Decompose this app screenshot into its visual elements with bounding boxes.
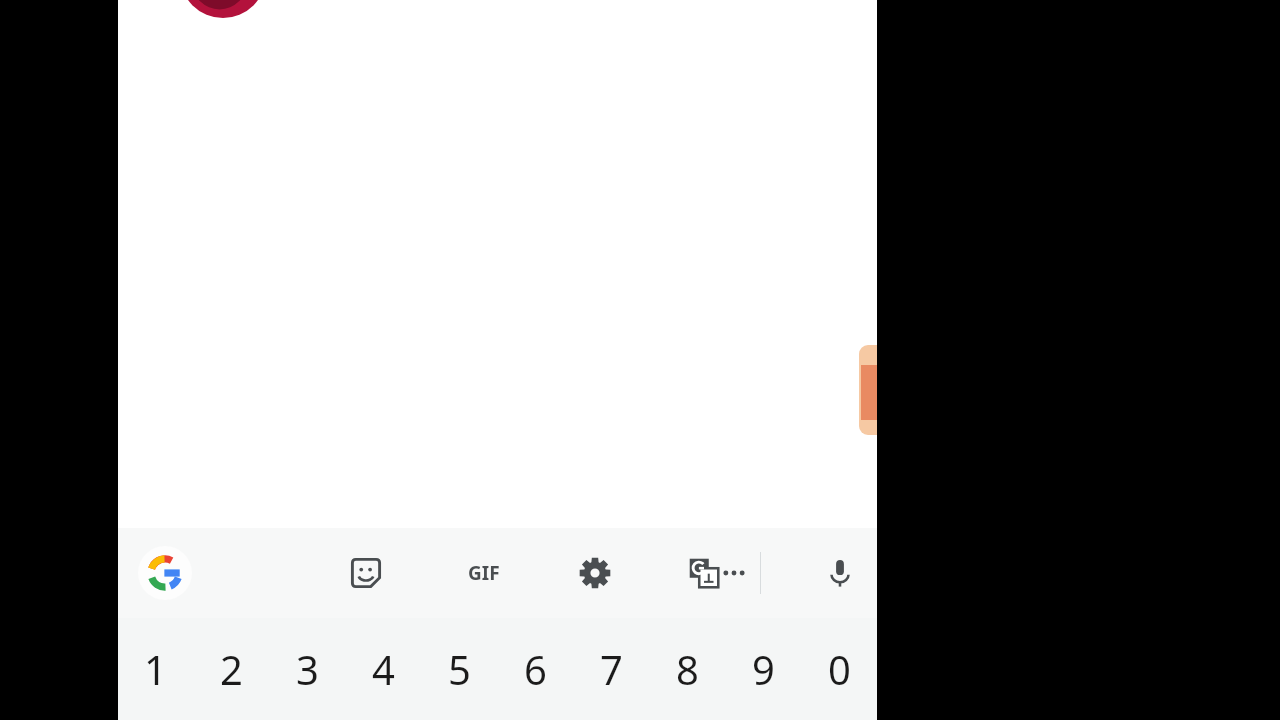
button[interactable]: 2 bbox=[193, 618, 269, 720]
button[interactable]: 9 bbox=[725, 618, 801, 720]
staticText: 3 bbox=[296, 642, 319, 696]
button[interactable]: Settings bbox=[567, 545, 623, 601]
button[interactable]: 0 bbox=[801, 618, 877, 720]
button[interactable]: GIF bbox=[456, 545, 512, 601]
button[interactable]: 7 bbox=[573, 618, 649, 720]
button[interactable]: 5 bbox=[421, 618, 497, 720]
button[interactable]: Voice input bbox=[812, 545, 868, 601]
button[interactable]: 4 bbox=[345, 618, 421, 720]
staticText: 4 bbox=[372, 642, 395, 696]
button[interactable]: More options bbox=[706, 545, 762, 601]
staticText: 1 bbox=[144, 642, 167, 696]
button[interactable]: 1 bbox=[118, 618, 193, 720]
button[interactable]: Google search bbox=[118, 528, 877, 618]
button[interactable]: Google search bbox=[138, 546, 192, 600]
staticText: 5 bbox=[448, 642, 471, 696]
staticText: 9 bbox=[752, 642, 775, 696]
button[interactable]: Translate bbox=[676, 545, 732, 601]
staticText: 6 bbox=[524, 642, 547, 696]
button[interactable]: Stickers bbox=[338, 545, 394, 601]
staticText: 7 bbox=[600, 642, 623, 696]
button[interactable]: 3 bbox=[269, 618, 345, 720]
staticText: 0 bbox=[828, 642, 851, 696]
staticText: 8 bbox=[676, 642, 699, 696]
staticText: 2 bbox=[220, 642, 243, 696]
button[interactable]: 6 bbox=[497, 618, 573, 720]
staticText: GIF bbox=[468, 560, 500, 586]
button[interactable]: 8 bbox=[649, 618, 725, 720]
